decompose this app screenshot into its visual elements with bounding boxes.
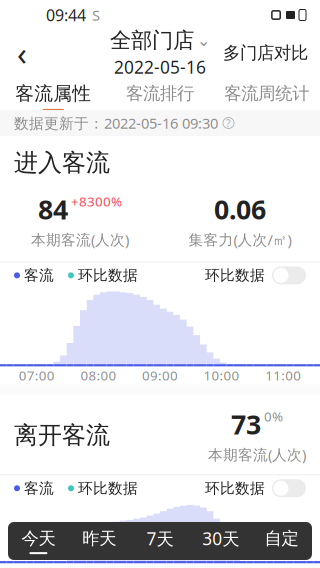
- button[interactable]: 30天: [190, 522, 251, 560]
- button[interactable]: 昨天: [69, 522, 130, 560]
- staticText: ?: [226, 116, 231, 130]
- staticText: ‹: [17, 32, 27, 74]
- button[interactable]: 7天: [130, 522, 190, 560]
- staticText: 73: [231, 406, 261, 442]
- staticText: 集客力(人次/㎡): [188, 230, 291, 249]
- staticText: 09:44: [46, 4, 86, 26]
- staticText: ⌄: [197, 31, 210, 50]
- button[interactable]: 客流排行: [107, 75, 213, 111]
- staticText: 环比数据: [205, 479, 265, 497]
- button[interactable]: 环比数据: [205, 266, 306, 284]
- staticText: 全部门店: [110, 27, 194, 54]
- staticText: 84: [38, 191, 68, 227]
- staticText: 客流属性: [15, 82, 91, 105]
- button[interactable]: 多门店对比: [211, 31, 320, 75]
- staticText: 11:00: [265, 366, 301, 384]
- staticText: 数据更新于：2022-05-16 09:30: [14, 113, 218, 133]
- staticText: 环比数据: [205, 266, 265, 284]
- staticText: 0.06: [214, 191, 266, 227]
- staticText: 客流: [24, 479, 54, 497]
- staticText: +8300%: [71, 192, 122, 210]
- staticText: 客流排行: [126, 83, 194, 104]
- staticText: 本期客流(人次): [31, 230, 129, 249]
- staticText: 多门店对比: [223, 42, 308, 64]
- button[interactable]: 自定: [251, 522, 312, 560]
- button[interactable]: 今天: [8, 522, 69, 560]
- staticText: 客流周统计: [224, 83, 309, 104]
- staticText: 09:00: [142, 366, 178, 384]
- staticText: 0%: [264, 407, 283, 425]
- staticText: 离开客流: [14, 421, 110, 450]
- staticText: 今天: [21, 528, 55, 549]
- staticText: 本期客流(人次): [208, 445, 306, 464]
- staticText: 30天: [202, 527, 239, 550]
- staticText: 7天: [146, 527, 173, 550]
- staticText: 进入客流: [14, 148, 110, 177]
- button[interactable]: 客流属性: [0, 74, 107, 112]
- staticText: S: [92, 5, 100, 25]
- button[interactable]: 返回: [0, 31, 44, 75]
- staticText: 自定: [265, 528, 299, 549]
- staticText: 2022-05-16: [114, 56, 206, 79]
- button[interactable]: 客流周统计: [213, 75, 320, 111]
- staticText: 08:00: [80, 366, 116, 384]
- button[interactable]: 环比数据: [205, 479, 306, 497]
- staticText: 环比数据: [78, 266, 138, 284]
- staticText: 10:00: [204, 366, 240, 384]
- button[interactable]: 说明: [223, 117, 234, 128]
- staticText: 07:00: [19, 366, 55, 384]
- staticText: 昨天: [82, 528, 116, 549]
- staticText: 客流: [24, 266, 54, 284]
- staticText: 环比数据: [78, 479, 138, 497]
